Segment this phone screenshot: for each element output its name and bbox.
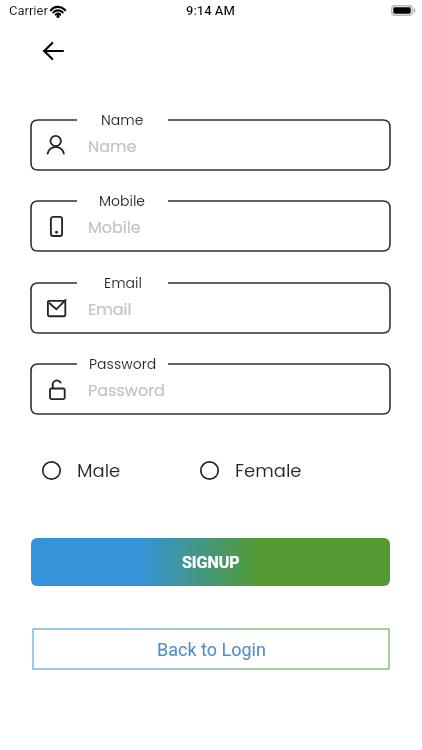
staticText: Female bbox=[235, 458, 302, 483]
button[interactable]: Email bbox=[31, 283, 390, 333]
staticText: Email bbox=[104, 273, 142, 293]
button[interactable]: Back bbox=[34, 34, 74, 74]
button[interactable]: Male bbox=[42, 457, 121, 484]
staticText: Back to Login bbox=[157, 639, 266, 660]
button[interactable]: Password bbox=[31, 364, 390, 414]
button[interactable]: Name bbox=[31, 120, 390, 170]
staticText: Email bbox=[88, 298, 132, 320]
staticText: Male bbox=[77, 458, 121, 483]
staticText: Mobile bbox=[88, 216, 141, 238]
staticText: Password bbox=[88, 379, 165, 401]
staticText: Password bbox=[89, 354, 157, 374]
button[interactable]: SIGNUP bbox=[31, 538, 390, 586]
staticText: Carrier bbox=[9, 3, 48, 18]
button[interactable]: Mobile bbox=[31, 201, 390, 251]
staticText: 9:14 AM bbox=[186, 3, 235, 18]
staticText: SIGNUP bbox=[182, 553, 240, 572]
staticText: Name bbox=[101, 110, 144, 130]
staticText: Name bbox=[88, 135, 137, 157]
button[interactable]: Female bbox=[200, 457, 302, 484]
button[interactable]: Back to Login bbox=[33, 629, 389, 669]
staticText: Mobile bbox=[99, 191, 146, 211]
